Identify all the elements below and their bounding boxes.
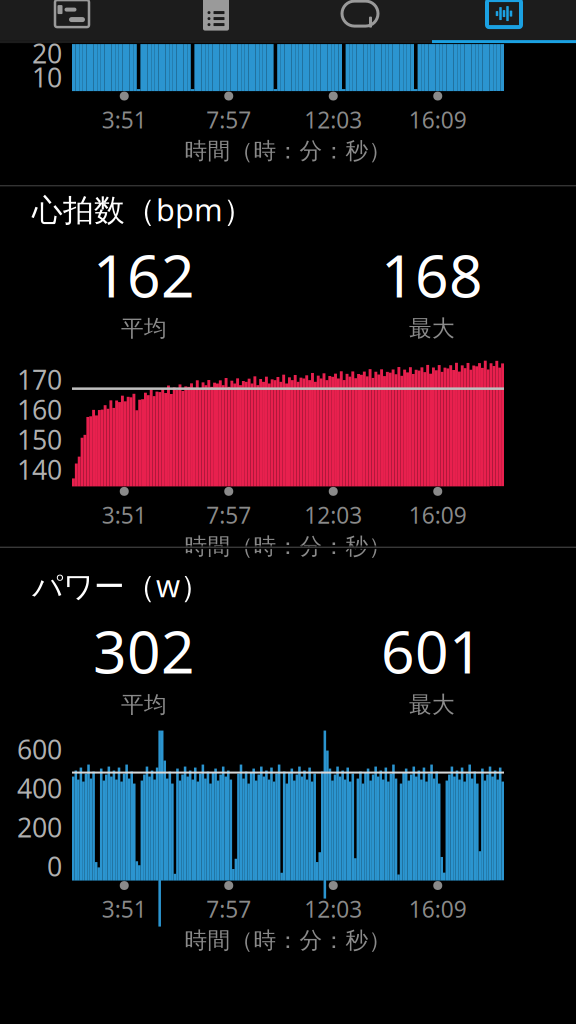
staticText: 160 [17,392,62,427]
staticText: 平均 [121,691,167,718]
staticText: 601 [381,612,483,690]
staticText: 7:57 [206,104,251,135]
button[interactable]: Map [0,0,144,31]
staticText: 7:57 [206,500,251,530]
staticText: 3:51 [102,894,147,924]
staticText: 150 [17,422,62,457]
staticText: 140 [17,452,62,487]
staticText: 16:09 [409,104,467,135]
staticText: 7:57 [206,894,251,924]
staticText: 時間（時：分：秒） [184,927,391,954]
staticText: 12:03 [304,104,362,135]
staticText: パワー（w） [32,565,211,606]
staticText: 200 [17,809,62,845]
staticText: 平均 [121,315,167,342]
staticText: 3:51 [102,500,147,530]
staticText: 10 [32,59,62,95]
staticText: 時間（時：分：秒） [184,532,391,560]
staticText: 16:09 [409,894,467,924]
staticText: 16:09 [409,500,467,530]
staticText: 最大 [409,315,455,342]
staticText: 168 [381,236,483,314]
staticText: 400 [17,770,62,806]
button[interactable]: Laps [288,0,432,31]
staticText: 302 [93,612,195,690]
staticText: 0 [47,848,62,884]
staticText: 時間（時：分：秒） [184,137,391,165]
staticText: 3:51 [102,104,147,135]
button[interactable]: Details [144,0,288,31]
staticText: 最大 [409,691,455,718]
staticText: 170 [17,362,62,397]
button[interactable]: Charts [432,0,576,31]
staticText: 12:03 [304,894,362,924]
staticText: 12:03 [304,500,362,530]
staticText: 20 [32,35,62,71]
staticText: 162 [93,236,195,314]
staticText: 600 [17,731,62,767]
staticText: 心拍数（bpm） [32,189,254,230]
